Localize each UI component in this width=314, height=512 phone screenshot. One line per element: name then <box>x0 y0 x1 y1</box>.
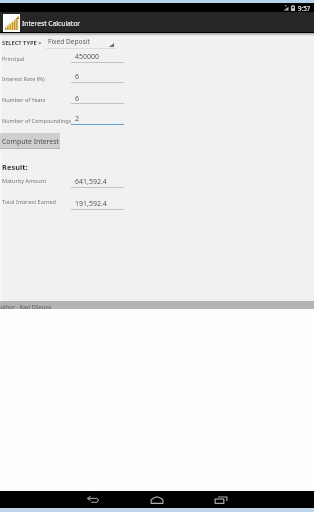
staticText: Number of Years <box>2 96 46 103</box>
staticText: Fixed Deposit <box>48 37 90 46</box>
staticText: Compute Interest <box>2 137 59 146</box>
button[interactable]: Recents <box>189 491 253 508</box>
staticText: Number of Compoundings <box>2 117 72 124</box>
staticText: 641,592.4 <box>75 177 107 187</box>
staticText: 6 <box>75 94 80 104</box>
staticText: 450000 <box>75 52 100 62</box>
staticText: Principal <box>2 55 25 62</box>
staticText: Interest Rate (%) <box>2 75 45 82</box>
staticText: Total Interest Earned <box>2 198 56 205</box>
staticText: SELECT TYPE > <box>2 39 42 47</box>
button[interactable]: Compute Interest <box>0 133 60 149</box>
staticText: Maturity Amount <box>2 177 47 184</box>
staticText: 191,592.4 <box>75 199 107 209</box>
button[interactable]: Home <box>125 491 189 508</box>
button[interactable]: Fixed Deposit <box>46 34 116 48</box>
staticText: Author - Ravi DSouza <box>0 303 52 310</box>
button[interactable]: Back <box>61 491 125 508</box>
staticText: 2 <box>75 114 80 124</box>
staticText: 6 <box>75 72 80 82</box>
staticText: Result: <box>2 162 28 172</box>
staticText: Interest Calculator <box>22 19 81 28</box>
staticText: 9:57 <box>298 4 311 12</box>
